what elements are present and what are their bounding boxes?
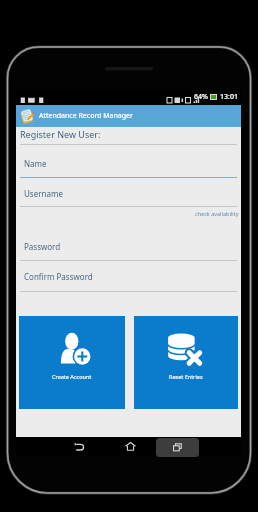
staticText: Create Account bbox=[52, 373, 92, 380]
staticText: Reset Entries bbox=[169, 373, 203, 380]
staticText: Attendance Record Manager bbox=[39, 111, 133, 121]
button[interactable]: Reset Entries bbox=[134, 316, 238, 409]
staticText: 13:01 bbox=[220, 92, 238, 102]
button[interactable]: Back bbox=[67, 437, 91, 456]
staticText: Name bbox=[24, 158, 47, 169]
button[interactable]: Create Account bbox=[19, 316, 125, 409]
staticText: Register New User: bbox=[20, 128, 101, 140]
staticText: Username bbox=[24, 188, 63, 199]
staticText: 64% bbox=[194, 92, 208, 102]
button[interactable]: Recent apps bbox=[156, 438, 199, 457]
button[interactable]: check availability bbox=[190, 208, 239, 219]
staticText: check availability bbox=[195, 210, 239, 217]
button[interactable]: Home bbox=[118, 437, 142, 456]
staticText: Password bbox=[24, 241, 61, 252]
staticText: Confirm Password bbox=[24, 271, 93, 282]
